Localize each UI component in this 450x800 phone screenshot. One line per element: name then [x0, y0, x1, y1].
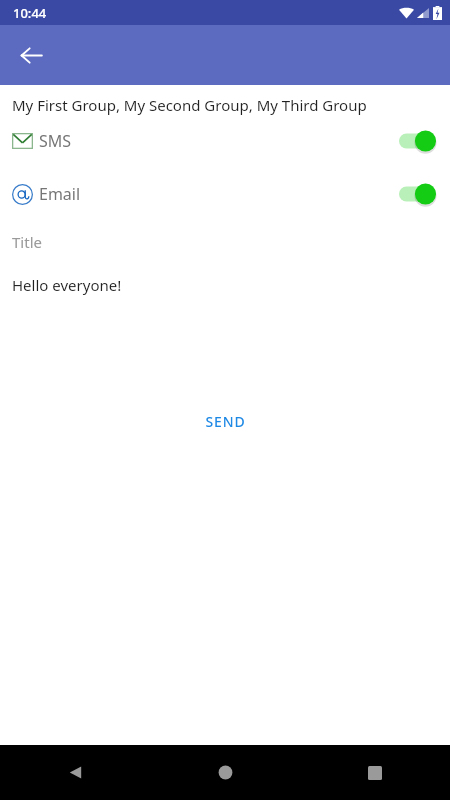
button[interactable]: Back [8, 32, 54, 78]
button[interactable]: Toggle [399, 182, 437, 206]
staticText: Email [39, 183, 81, 205]
button[interactable]: Email [0, 179, 450, 209]
button[interactable]: Title [0, 231, 450, 253]
staticText: SEND [205, 412, 246, 431]
button[interactable]: Recent apps [300, 745, 450, 800]
staticText: Hello everyone! [12, 275, 122, 295]
staticText: Title [12, 232, 42, 252]
button[interactable]: SEND [191, 406, 260, 437]
button[interactable]: Home [150, 745, 300, 800]
button[interactable]: Back [0, 745, 150, 800]
button[interactable]: SMS [0, 126, 450, 156]
staticText: My First Group, My Second Group, My Thir… [12, 95, 367, 115]
button[interactable]: My First Group, My Second Group, My Thir… [0, 93, 450, 117]
staticText: SMS [39, 130, 72, 152]
button[interactable]: Hello everyone! [0, 274, 450, 296]
staticText: 10:44 [13, 4, 47, 22]
button[interactable]: Toggle [399, 129, 437, 153]
